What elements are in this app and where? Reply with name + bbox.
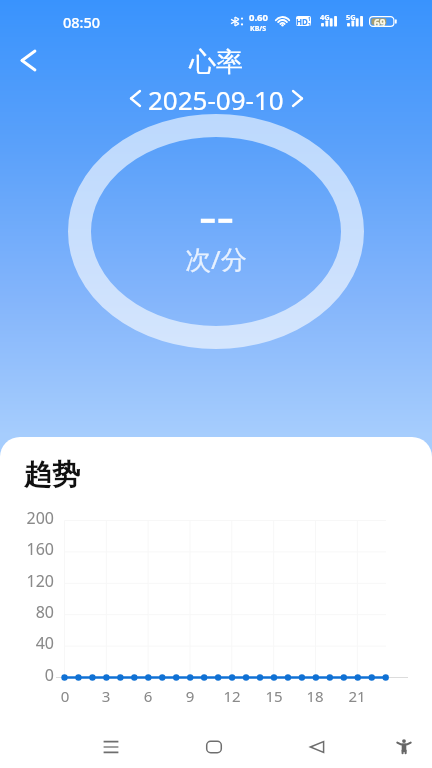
staticText: 21 xyxy=(342,686,372,706)
button[interactable]: Back xyxy=(295,725,339,768)
staticText: 0 xyxy=(50,686,80,706)
staticText: 120 xyxy=(6,570,54,592)
staticText: 5G xyxy=(346,12,356,22)
button[interactable]: Recents xyxy=(89,725,133,768)
staticText: 18 xyxy=(300,686,330,706)
button[interactable]: Previous day xyxy=(120,83,150,113)
staticText: 40 xyxy=(6,632,54,654)
staticText: HD xyxy=(296,16,308,26)
staticText: 2025-09-10 xyxy=(148,82,284,117)
staticText: 69 xyxy=(374,16,386,27)
staticText: 200 xyxy=(6,507,54,529)
button[interactable]: Back xyxy=(6,38,51,83)
button[interactable]: Accessibility xyxy=(382,725,426,768)
staticText: 1 xyxy=(308,16,311,22)
staticText: 0 xyxy=(6,664,54,686)
staticText: 0.60 xyxy=(249,11,268,24)
staticText: 2 xyxy=(308,22,311,26)
staticText: 12 xyxy=(217,686,247,706)
staticText: 4G xyxy=(320,12,330,22)
staticText: 9 xyxy=(175,686,205,706)
staticText: KB/S xyxy=(250,24,267,34)
staticText: 6 xyxy=(133,686,163,706)
staticText: 160 xyxy=(6,538,54,560)
staticText: 3 xyxy=(91,686,121,706)
staticText: 08:50 xyxy=(63,12,101,32)
staticText: 趋势 xyxy=(24,457,80,492)
button[interactable]: Home xyxy=(192,725,236,768)
staticText: 80 xyxy=(6,601,54,623)
staticText: 15 xyxy=(259,686,289,706)
staticText: 次/分 xyxy=(185,241,247,277)
button[interactable]: Next day xyxy=(282,83,312,113)
staticText: 心率 xyxy=(189,45,243,79)
